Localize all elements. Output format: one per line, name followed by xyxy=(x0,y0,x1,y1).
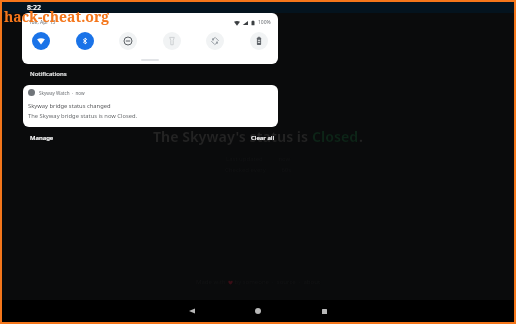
button[interactable]: Battery saver xyxy=(250,32,268,50)
staticText: 100% xyxy=(258,19,271,26)
button[interactable]: Bluetooth xyxy=(76,32,94,50)
staticText: hack-cheat.org xyxy=(4,7,110,26)
button[interactable]: Auto rotate xyxy=(206,32,224,50)
button[interactable]: Flashlight xyxy=(163,32,181,50)
staticText: . xyxy=(359,127,363,146)
button[interactable]: Back xyxy=(181,300,203,322)
staticText: The Skyway's status is xyxy=(153,127,312,146)
button[interactable]: Wi-Fi xyxy=(32,32,50,50)
staticText: Closed xyxy=(312,127,359,146)
staticText: Skyway bridge status changed xyxy=(28,102,111,110)
button[interactable]: Clear all xyxy=(247,132,279,144)
staticText: Clear all xyxy=(251,134,275,142)
staticText: 8:22 xyxy=(27,3,41,13)
staticText: Notifications xyxy=(30,70,67,78)
button[interactable]: Recent apps xyxy=(313,300,335,322)
staticText: Skyway Watch · now xyxy=(39,90,85,96)
button[interactable]: Skyway Watch · now xyxy=(23,85,278,127)
button[interactable]: Do not disturb xyxy=(119,32,137,50)
staticText: Manage xyxy=(30,134,54,142)
button[interactable]: Manage xyxy=(26,132,58,144)
staticText: Tue, Apr 13 xyxy=(29,19,56,26)
button[interactable]: Home xyxy=(247,300,269,322)
staticText: The Skyway bridge status is now Closed. xyxy=(28,112,138,120)
